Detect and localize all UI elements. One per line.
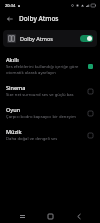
button[interactable]: Dolby Atmos bbox=[3, 30, 97, 47]
staticText: 20:34 bbox=[5, 3, 16, 8]
button[interactable]: Oyun bbox=[0, 102, 100, 124]
button[interactable]: Akıllı bbox=[0, 52, 100, 80]
button[interactable]: Müzik bbox=[0, 124, 100, 146]
button[interactable]: Sinema bbox=[0, 80, 100, 102]
button[interactable]: Recent apps bbox=[15, 209, 29, 223]
staticText: Size net surround ses ve güçlü bas bbox=[6, 92, 74, 98]
button[interactable]: Back bbox=[4, 13, 15, 24]
button[interactable]: Back bbox=[72, 209, 86, 223]
staticText: Dolby Atmos bbox=[20, 35, 80, 42]
button[interactable]: Dolby Atmos toggle bbox=[80, 35, 93, 42]
staticText: Çarpıcı bodro kapsayıcı bir deneyim bbox=[6, 114, 76, 120]
staticText: Dolby Atmos bbox=[19, 14, 59, 23]
staticText: Akıllı bbox=[6, 56, 19, 63]
staticText: Oyun bbox=[6, 106, 21, 113]
staticText: Ses efektlerini kullandığı içeriğe göre … bbox=[6, 64, 82, 76]
staticText: Sinema bbox=[6, 84, 26, 91]
staticText: Müzik bbox=[6, 128, 22, 135]
button[interactable]: Home bbox=[43, 209, 57, 223]
staticText: Daha doğal ve dengeli ses bbox=[6, 136, 58, 142]
